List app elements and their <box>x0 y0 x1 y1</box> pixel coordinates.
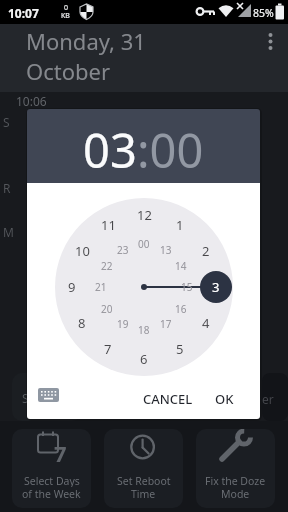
staticText: Fix the Doze <box>205 474 266 487</box>
staticText: Select Days <box>24 474 80 487</box>
staticText: 15 <box>181 280 193 294</box>
button[interactable]: CANCEL <box>128 387 208 411</box>
staticText: 16 <box>175 302 187 316</box>
staticText: 03 <box>83 118 137 182</box>
staticText: 18 <box>138 323 150 337</box>
staticText: 4 <box>202 314 210 332</box>
staticText: 0 <box>64 3 69 13</box>
staticText: 20 <box>101 302 113 316</box>
staticText: Time <box>131 487 156 500</box>
staticText: 21 <box>95 280 107 294</box>
button[interactable]: Set Reboot <box>104 429 183 508</box>
staticText: CANCEL <box>143 390 193 408</box>
button[interactable]: OK <box>207 387 241 411</box>
staticText: :00 <box>137 118 204 182</box>
staticText: 12 <box>137 206 152 224</box>
staticText: 9 <box>68 278 76 296</box>
staticText: 5 <box>176 340 184 358</box>
staticText: 7 <box>104 340 112 358</box>
staticText: 14 <box>175 259 187 273</box>
staticText: Monday, 31 <box>26 26 146 56</box>
staticText: of the Week <box>22 487 81 500</box>
staticText: R <box>3 180 11 196</box>
staticText: 10 <box>75 242 90 260</box>
staticText: S <box>22 390 29 406</box>
staticText: 22 <box>101 259 113 273</box>
staticText: 7 <box>54 438 67 468</box>
staticText: 19 <box>117 317 129 331</box>
staticText: M <box>3 224 14 240</box>
staticText: 6 <box>140 350 148 368</box>
staticText: 13 <box>160 243 172 257</box>
button[interactable] <box>35 385 61 405</box>
staticText: 8 <box>78 314 86 332</box>
staticText: October <box>26 56 111 86</box>
staticText: 11 <box>101 216 116 234</box>
staticText: 3 <box>212 278 220 296</box>
staticText: 23 <box>117 243 129 257</box>
button[interactable]: 7 <box>12 429 91 508</box>
staticText: Mode <box>221 487 250 500</box>
staticText: 85% <box>253 6 274 20</box>
staticText: S <box>3 114 10 130</box>
staticText: 10:07 <box>8 5 39 21</box>
staticText: 1 <box>176 216 184 234</box>
staticText: 17 <box>160 317 172 331</box>
staticText: 2 <box>202 242 210 260</box>
staticText: er <box>262 391 274 407</box>
staticText: 00 <box>138 237 150 251</box>
staticText: OK <box>215 390 234 408</box>
button[interactable] <box>258 29 283 54</box>
staticText: KB <box>61 11 70 21</box>
button[interactable]: Fix the Doze <box>196 429 275 508</box>
staticText: Set Reboot <box>117 474 171 487</box>
staticText: 10:06 <box>16 93 47 109</box>
